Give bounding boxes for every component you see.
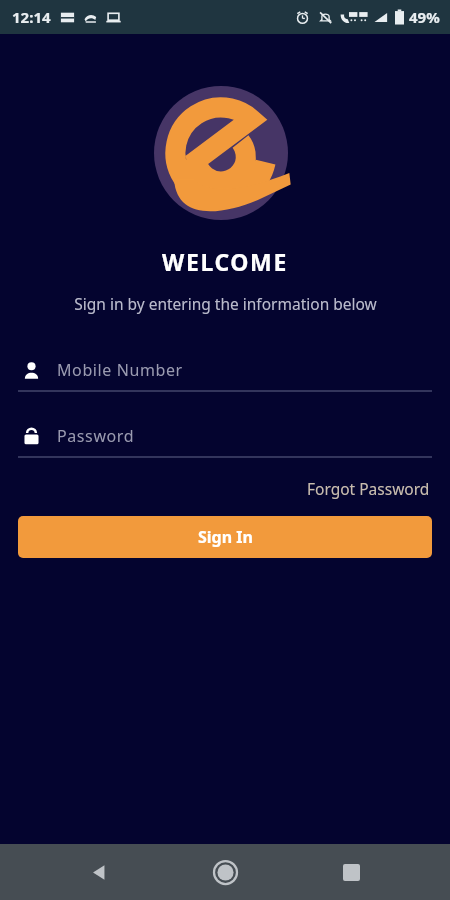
button[interactable]: Sign In: [18, 516, 432, 558]
button[interactable]: Recent apps: [324, 845, 378, 899]
button[interactable]: Back: [72, 845, 126, 899]
button[interactable]: Mobile Number: [18, 350, 432, 392]
staticText: 12:14: [12, 7, 51, 27]
staticText: Sign In: [198, 526, 253, 548]
button[interactable]: Forgot Password: [305, 474, 432, 503]
staticText: Mobile Number: [57, 359, 183, 381]
staticText: 49%: [409, 7, 440, 27]
staticText: Sign in by entering the information belo…: [74, 293, 377, 314]
staticText: Password: [57, 425, 135, 447]
staticText: Forgot Password: [307, 478, 430, 499]
button[interactable]: Home: [198, 845, 252, 899]
staticText: WELCOME: [162, 246, 288, 277]
button[interactable]: Password: [18, 416, 432, 458]
